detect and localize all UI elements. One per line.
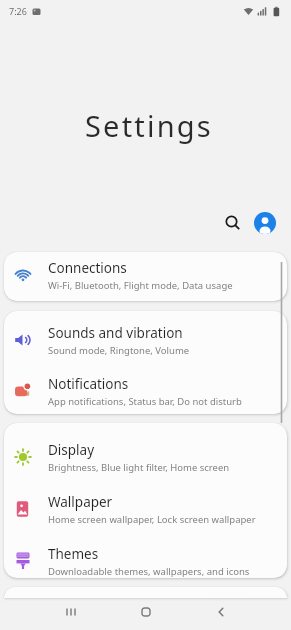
- staticText: Connections: [48, 259, 127, 277]
- button[interactable]: [222, 212, 244, 234]
- staticText: Display: [48, 441, 95, 459]
- button[interactable]: Sounds and vibration: [4, 324, 287, 356]
- staticText: App notifications, Status bar, Do not di…: [48, 395, 242, 407]
- button[interactable]: [108, 598, 183, 625]
- button[interactable]: Notifications: [4, 375, 287, 407]
- staticText: Home screen wallpaper, Lock screen wallp…: [48, 513, 256, 525]
- staticText: 7:26: [9, 5, 27, 17]
- staticText: Wallpaper: [48, 493, 113, 511]
- button[interactable]: [33, 598, 108, 625]
- staticText: Sound mode, Ringtone, Volume: [48, 344, 190, 356]
- staticText: Brightness, Blue light filter, Home scre…: [48, 461, 230, 473]
- button[interactable]: [183, 598, 258, 625]
- button[interactable]: Wallpaper: [4, 493, 287, 525]
- staticText: Wi-Fi, Bluetooth, Flight mode, Data usag…: [48, 279, 233, 291]
- button[interactable]: Connections: [4, 259, 287, 291]
- staticText: Sounds and vibration: [48, 324, 183, 342]
- button[interactable]: Display: [4, 441, 287, 473]
- button[interactable]: Themes: [4, 545, 287, 577]
- staticText: Notifications: [48, 375, 129, 393]
- staticText: Themes: [48, 545, 99, 563]
- staticText: Downloadable themes, wallpapers, and ico…: [48, 565, 250, 577]
- button[interactable]: [254, 212, 276, 234]
- staticText: Settings: [85, 106, 213, 145]
